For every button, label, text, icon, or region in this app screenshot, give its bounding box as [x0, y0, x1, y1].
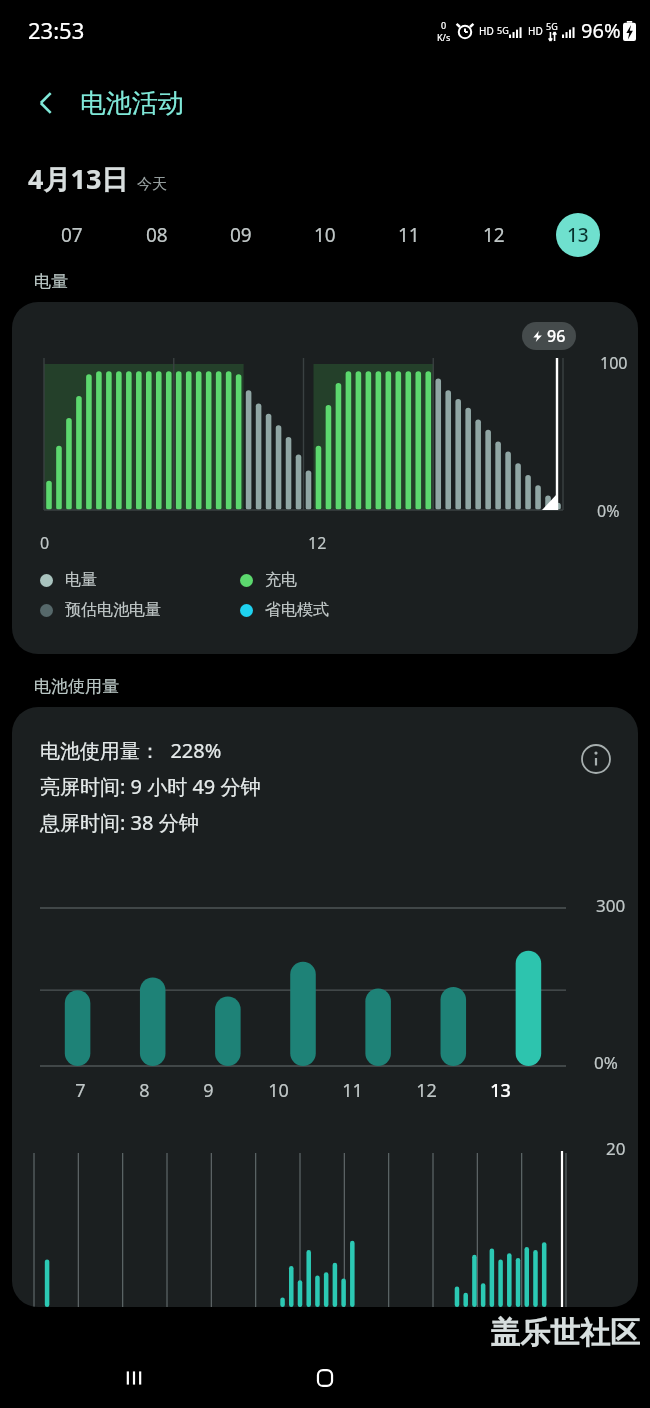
staticText: 电池使用量： 228% — [40, 737, 222, 764]
staticText: 96 — [547, 325, 566, 347]
staticText: 电池活动 — [80, 87, 184, 120]
staticText: 10 — [268, 1078, 289, 1103]
staticText: 预估电池电量 — [65, 600, 161, 620]
button[interactable]: 08 — [135, 213, 179, 257]
staticText: 亮屏时间: 9 小时 49 分钟 — [40, 773, 261, 800]
staticText: 4月13日 — [28, 160, 129, 197]
staticText: 电量 — [34, 271, 68, 292]
staticText: 07 — [61, 222, 83, 248]
staticText: 电量 — [65, 570, 97, 590]
staticText: 100 — [600, 352, 628, 374]
button[interactable]: 11 — [387, 213, 431, 257]
button[interactable]: 电池使用量： 228% — [12, 707, 638, 1307]
button[interactable]: Back — [18, 75, 74, 131]
staticText: 11 — [342, 1078, 363, 1103]
button[interactable]: 100 — [12, 302, 638, 654]
staticText: 充电 — [265, 570, 297, 590]
staticText: 10 — [314, 222, 336, 248]
staticText: HD — [528, 24, 543, 38]
button[interactable]: 12 — [472, 213, 516, 257]
staticText: 省电模式 — [265, 600, 329, 620]
staticText: 12 — [308, 532, 327, 554]
staticText: 300 — [596, 894, 626, 917]
staticText: 0 — [441, 19, 447, 31]
button[interactable]: 07 — [50, 213, 94, 257]
staticText: K/s — [437, 31, 451, 43]
staticText: 盖乐世社区 — [490, 1314, 640, 1352]
staticText: 96% — [581, 17, 621, 44]
staticText: 5G — [497, 24, 509, 36]
staticText: 13 — [567, 222, 589, 248]
staticText: 电池使用量 — [34, 676, 119, 697]
staticText: 08 — [146, 222, 168, 248]
staticText: 0% — [597, 500, 620, 522]
staticText: 09 — [230, 222, 252, 248]
button[interactable]: Info — [574, 737, 618, 781]
staticText: 0 — [40, 532, 50, 554]
staticText: 13 — [490, 1078, 511, 1103]
staticText: 5G — [546, 20, 558, 32]
staticText: 8 — [139, 1078, 150, 1103]
staticText: 7 — [75, 1078, 86, 1103]
staticText: 11 — [398, 222, 420, 248]
button[interactable]: 10 — [303, 213, 347, 257]
staticText: 12 — [483, 222, 505, 248]
staticText: HD — [479, 24, 494, 38]
staticText: 0% — [594, 1051, 618, 1074]
staticText: 23:53 — [28, 15, 85, 45]
staticText: 息屏时间: 38 分钟 — [40, 809, 199, 836]
button[interactable]: Home — [301, 1354, 349, 1402]
staticText: 9 — [203, 1078, 214, 1103]
staticText: 20 — [606, 1137, 626, 1160]
button[interactable]: 13 — [556, 213, 600, 257]
button[interactable]: 09 — [219, 213, 263, 257]
staticText: 今天 — [137, 175, 167, 194]
button[interactable]: Recents — [110, 1354, 158, 1402]
staticText: 12 — [416, 1078, 437, 1103]
